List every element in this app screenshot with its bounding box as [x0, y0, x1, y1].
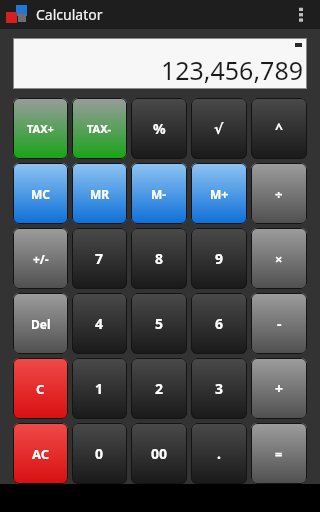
- button[interactable]: 9: [191, 228, 247, 289]
- button[interactable]: √: [191, 98, 247, 159]
- button[interactable]: More options: [290, 4, 312, 26]
- staticText: MR: [90, 186, 110, 202]
- button[interactable]: ÷: [251, 163, 307, 224]
- staticText: Del: [31, 316, 51, 332]
- button[interactable]: +/-: [13, 228, 68, 289]
- staticText: 5: [155, 314, 164, 333]
- button[interactable]: 8: [131, 228, 187, 289]
- button[interactable]: 3: [191, 358, 247, 419]
- staticText: 7: [95, 249, 104, 268]
- staticText: +: [275, 379, 284, 398]
- button[interactable]: 00: [131, 423, 187, 484]
- staticText: C: [36, 380, 45, 398]
- staticText: MC: [31, 186, 51, 202]
- staticText: +/-: [33, 251, 49, 267]
- button[interactable]: C: [13, 358, 68, 419]
- staticText: 4: [95, 314, 104, 333]
- button[interactable]: 6: [191, 293, 247, 354]
- staticText: =: [275, 445, 283, 463]
- staticText: TAX+: [27, 121, 54, 136]
- staticText: 6: [215, 314, 224, 333]
- staticText: ÷: [275, 185, 283, 203]
- staticText: ×: [275, 250, 283, 268]
- staticText: AC: [32, 445, 50, 463]
- staticText: Calculator: [36, 5, 103, 24]
- staticText: 123,456,789: [160, 53, 303, 87]
- button[interactable]: +: [251, 358, 307, 419]
- staticText: %: [153, 119, 166, 138]
- button[interactable]: 7: [72, 228, 127, 289]
- button[interactable]: AC: [13, 423, 68, 484]
- button[interactable]: 4: [72, 293, 127, 354]
- button[interactable]: Del: [13, 293, 68, 354]
- button[interactable]: 0: [72, 423, 127, 484]
- staticText: M-: [151, 186, 167, 202]
- staticText: 8: [155, 249, 164, 268]
- staticText: M+: [210, 186, 229, 202]
- button[interactable]: .: [191, 423, 247, 484]
- staticText: -: [277, 314, 282, 333]
- button[interactable]: TAX-: [72, 98, 127, 159]
- staticText: 3: [215, 379, 224, 398]
- button[interactable]: TAX+: [13, 98, 68, 159]
- button[interactable]: 5: [131, 293, 187, 354]
- staticText: .: [217, 444, 221, 463]
- staticText: √: [214, 121, 224, 137]
- staticText: 00: [151, 444, 168, 463]
- button[interactable]: ^: [251, 98, 307, 159]
- button[interactable]: MR: [72, 163, 127, 224]
- staticText: 1: [95, 379, 104, 398]
- button[interactable]: =: [251, 423, 307, 484]
- button[interactable]: M+: [191, 163, 247, 224]
- button[interactable]: %: [131, 98, 187, 159]
- button[interactable]: M-: [131, 163, 187, 224]
- button[interactable]: 1: [72, 358, 127, 419]
- staticText: 9: [215, 249, 224, 268]
- button[interactable]: -: [251, 293, 307, 354]
- staticText: 0: [95, 444, 104, 463]
- button[interactable]: 2: [131, 358, 187, 419]
- button[interactable]: ×: [251, 228, 307, 289]
- staticText: ^: [275, 119, 284, 138]
- button[interactable]: MC: [13, 163, 68, 224]
- staticText: 2: [155, 379, 164, 398]
- staticText: TAX-: [87, 121, 112, 136]
